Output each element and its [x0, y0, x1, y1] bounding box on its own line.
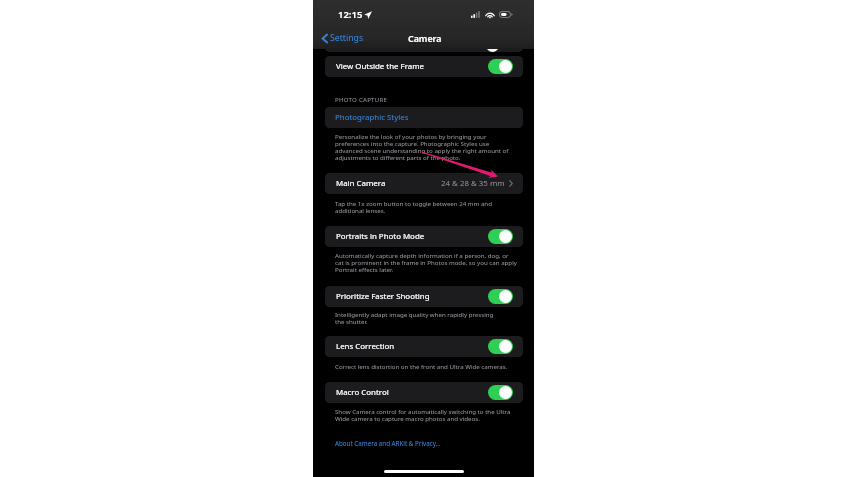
staticText: Main Camera [336, 178, 386, 189]
button[interactable]: View Outside the Frame [325, 56, 523, 77]
staticText: Personalize the look of your photos by b… [335, 132, 509, 162]
button[interactable]: Portraits in Photo Mode [325, 226, 523, 247]
button[interactable]: Lens Correction [325, 336, 523, 357]
staticText: PHOTO CAPTURE [335, 95, 388, 103]
staticText: Settings [330, 32, 364, 44]
staticText: Correct lens distortion on the front and… [335, 362, 508, 370]
button[interactable]: Settings [321, 32, 364, 44]
staticText: Lens Correction [336, 341, 395, 352]
button[interactable]: Macro Control [325, 382, 523, 403]
staticText: Prioritize Faster Shooting [336, 291, 430, 302]
staticText: Intelligently adapt image quality when r… [335, 310, 494, 326]
button[interactable]: Main Camera [325, 173, 523, 194]
staticText: Portraits in Photo Mode [336, 231, 425, 242]
staticText: Tap the 1x zoom button to toggle between… [335, 199, 492, 215]
staticText: 12:15 [338, 8, 363, 21]
staticText: Camera [408, 32, 442, 44]
staticText: Show Camera control for automatically sw… [335, 407, 511, 423]
staticText: 24 & 28 & 35 mm [441, 178, 505, 189]
button[interactable]: Prioritize Faster Shooting [325, 286, 523, 307]
staticText: Macro Control [336, 387, 389, 398]
button[interactable]: Photographic Styles [325, 107, 523, 128]
button[interactable]: About Camera and ARKit & Privacy... [335, 439, 441, 448]
staticText: Photographic Styles [335, 112, 409, 123]
staticText: About Camera and ARKit & Privacy... [335, 439, 441, 448]
staticText: Automatically capture depth information … [335, 251, 517, 274]
staticText: View Outside the Frame [336, 61, 425, 72]
